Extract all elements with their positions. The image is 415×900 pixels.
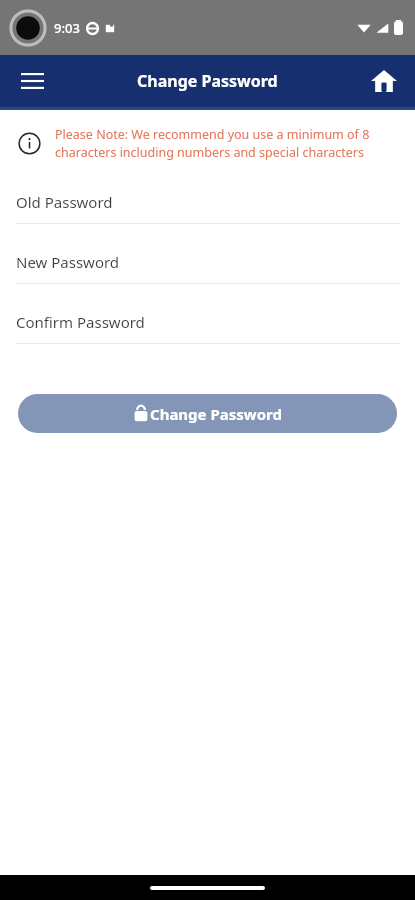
- staticText: New Password: [16, 252, 120, 272]
- button[interactable]: Change Password: [18, 394, 397, 433]
- staticText: Change Password: [137, 70, 278, 92]
- button[interactable]: Home: [363, 60, 405, 102]
- button[interactable]: Confirm Password: [0, 301, 415, 361]
- button[interactable]: New Password: [0, 241, 415, 301]
- staticText: Confirm Password: [16, 312, 145, 332]
- staticText: Change Password: [150, 404, 282, 424]
- staticText: Please Note: We recommend you use a mini…: [55, 126, 399, 161]
- button[interactable]: Open navigation menu: [12, 61, 52, 101]
- staticText: Old Password: [16, 192, 113, 212]
- button[interactable]: Old Password: [0, 181, 415, 241]
- staticText: 9:03: [54, 19, 80, 37]
